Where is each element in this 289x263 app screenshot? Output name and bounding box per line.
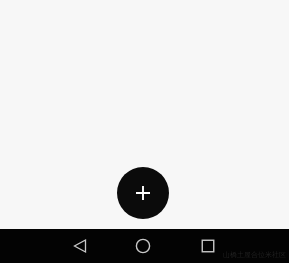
staticText: 山橋土屋合位米社区 bbox=[223, 250, 286, 259]
button[interactable]: Add bbox=[117, 167, 169, 219]
button[interactable]: Recent apps bbox=[190, 229, 226, 263]
button[interactable]: Home bbox=[125, 229, 161, 263]
button[interactable]: Back bbox=[62, 229, 98, 263]
